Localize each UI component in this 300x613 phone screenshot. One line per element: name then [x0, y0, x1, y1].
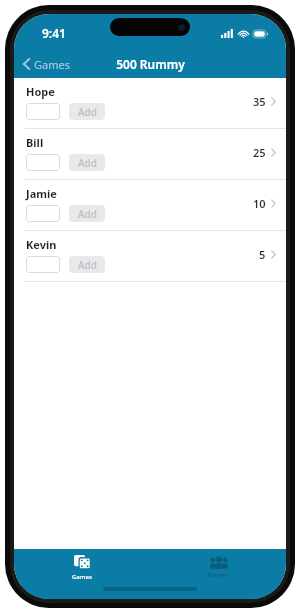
staticText: Bill [26, 135, 44, 150]
staticText: Kevin [26, 237, 57, 252]
staticText: Jamie [26, 186, 57, 201]
button[interactable]: Jamie [14, 180, 286, 230]
staticText: 9:41 [42, 25, 66, 41]
button[interactable] [26, 103, 60, 120]
button[interactable]: Add [69, 256, 105, 273]
button[interactable]: Add [69, 205, 105, 222]
staticText: 25 [253, 145, 266, 160]
button[interactable] [26, 205, 60, 222]
staticText: 35 [253, 94, 266, 109]
staticText: Games [34, 57, 70, 72]
button[interactable] [26, 256, 60, 273]
staticText: Add [78, 258, 97, 272]
button[interactable]: Kevin [14, 231, 286, 281]
staticText: Hope [26, 84, 55, 99]
staticText: 10 [253, 196, 266, 211]
button[interactable]: Players tab [194, 553, 243, 582]
staticText: Games [72, 573, 92, 581]
button[interactable]: Games tab [58, 551, 106, 584]
staticText: Add [78, 207, 97, 221]
button[interactable]: Add [69, 154, 105, 171]
staticText: 5 [259, 247, 266, 262]
button[interactable]: Games [14, 50, 78, 78]
staticText: 500 Rummy [116, 56, 185, 72]
button[interactable]: Bill [14, 129, 286, 179]
staticText: Add [78, 105, 97, 119]
staticText: Add [78, 156, 97, 170]
button[interactable] [26, 154, 60, 171]
staticText: Players [208, 571, 229, 579]
button[interactable]: Hope [14, 78, 286, 128]
button[interactable]: Add [69, 103, 105, 120]
